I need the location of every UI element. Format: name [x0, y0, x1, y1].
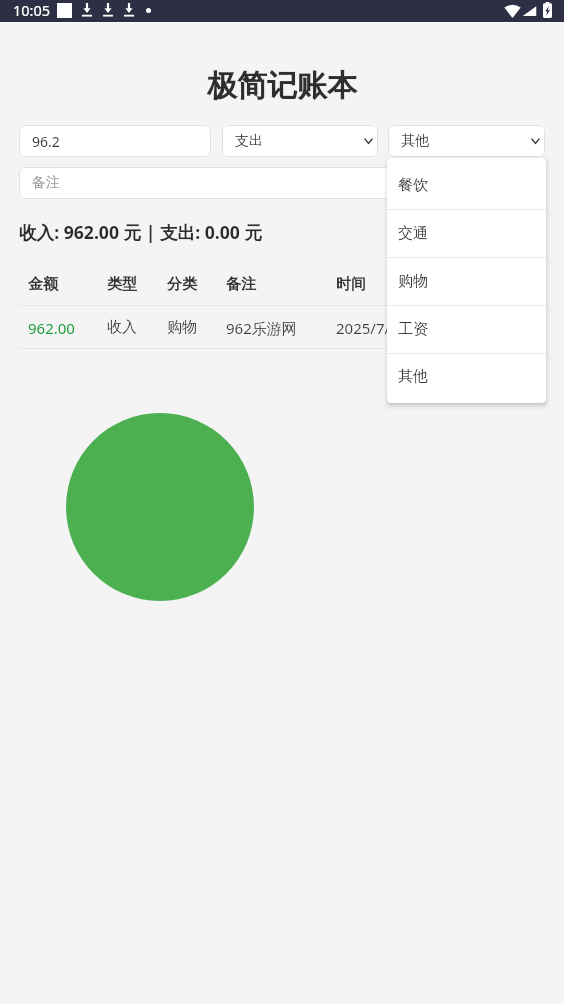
staticText: 962.00	[28, 318, 75, 338]
staticText: 支出	[235, 132, 263, 150]
staticText: 备注	[226, 275, 256, 294]
staticText: 96.2	[32, 132, 60, 151]
staticText: 962乐游网	[226, 318, 297, 338]
staticText: 其他	[398, 367, 428, 386]
staticText: 购物	[167, 318, 197, 337]
staticText: 餐饮	[398, 176, 428, 195]
staticText: 备注	[32, 174, 60, 192]
staticText: 金额	[28, 275, 58, 294]
staticText: 时间	[336, 275, 366, 294]
button[interactable]: 支出分类饼图	[66, 413, 254, 601]
button[interactable]: 支出	[222, 125, 378, 157]
button[interactable]: 餐饮	[387, 158, 546, 209]
staticText: 2025/7/2	[336, 318, 399, 338]
button[interactable]: 购物	[387, 257, 546, 305]
staticText: 工资	[398, 320, 428, 339]
button[interactable]: 其他	[387, 353, 546, 403]
staticText: 极简记账本	[0, 67, 564, 105]
button[interactable]: 交通	[387, 209, 546, 257]
staticText: 收入	[107, 318, 137, 337]
staticText: 其他	[401, 132, 429, 150]
button[interactable]: 962.00	[19, 306, 545, 348]
button[interactable]: 96.2	[19, 125, 211, 157]
staticText: 购物	[398, 272, 428, 291]
staticText: 交通	[398, 224, 428, 243]
button[interactable]: 备注	[19, 167, 545, 199]
staticText: 收入: 962.00 元 | 支出: 0.00 元	[19, 220, 262, 244]
staticText: 类型	[107, 275, 137, 294]
staticText: 10:05	[13, 0, 51, 20]
button[interactable]: 其他	[388, 125, 545, 157]
staticText: 分类	[167, 275, 197, 294]
button[interactable]: 工资	[387, 305, 546, 353]
